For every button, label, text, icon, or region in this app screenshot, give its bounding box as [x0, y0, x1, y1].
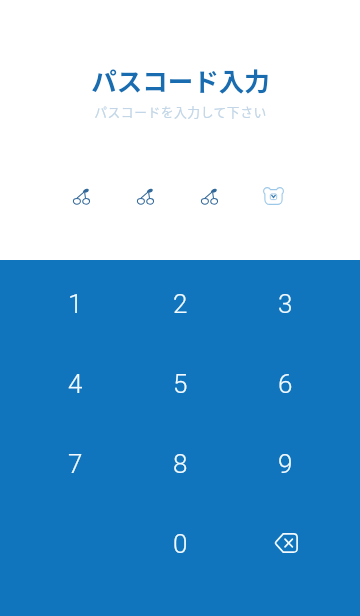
button[interactable]: 1 — [22, 264, 128, 344]
staticText: 4 — [68, 369, 83, 399]
staticText: パスコードを入力して下さい — [94, 102, 267, 121]
button[interactable]: 9 — [233, 424, 338, 504]
staticText: パスコード入力 — [91, 61, 270, 98]
button[interactable]: 4 — [22, 344, 128, 424]
staticText: 7 — [68, 449, 83, 479]
staticText: 8 — [173, 449, 188, 479]
button[interactable]: 2 — [128, 264, 233, 344]
staticText: 0 — [173, 529, 188, 559]
staticText: 2 — [173, 289, 188, 319]
button[interactable] — [241, 178, 305, 214]
button[interactable]: Backspace — [233, 504, 338, 584]
button[interactable]: 6 — [233, 344, 338, 424]
button[interactable]: 5 — [128, 344, 233, 424]
button[interactable]: 3 — [233, 264, 338, 344]
button[interactable] — [49, 178, 113, 214]
other: Backspace — [264, 525, 308, 561]
staticText: 6 — [278, 369, 293, 399]
staticText: 3 — [278, 289, 293, 319]
button[interactable] — [113, 178, 177, 214]
staticText: 9 — [278, 449, 293, 479]
button[interactable]: 0 — [128, 504, 233, 584]
staticText: 5 — [173, 369, 188, 399]
button[interactable]: 7 — [22, 424, 128, 504]
staticText: 1 — [68, 289, 83, 319]
button[interactable]: 8 — [128, 424, 233, 504]
button[interactable] — [177, 178, 241, 214]
